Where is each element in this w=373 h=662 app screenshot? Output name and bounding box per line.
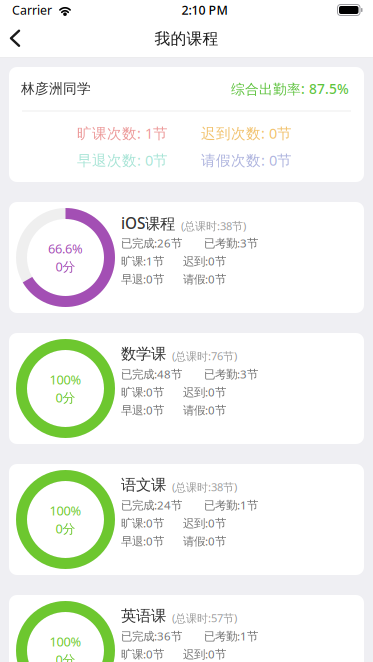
- staticText: 语文课: [121, 476, 166, 494]
- staticText: 0分: [55, 389, 75, 406]
- staticText: 请假:0节: [183, 533, 226, 549]
- staticText: 请假:0节: [183, 402, 226, 418]
- button[interactable]: 100%: [9, 333, 364, 444]
- staticText: 迟到:0节: [183, 515, 226, 531]
- staticText: 迟到次数: 0节: [201, 123, 292, 143]
- staticText: 数学课: [121, 345, 166, 363]
- button[interactable]: 66.6%: [9, 202, 364, 313]
- staticText: 林彦洲同学: [21, 80, 91, 97]
- staticText: 早退:0节: [121, 533, 164, 549]
- staticText: 100%: [49, 502, 81, 519]
- staticText: 已完成:48节: [121, 366, 182, 382]
- staticText: 已完成:26节: [121, 235, 182, 251]
- staticText: 已考勤:3节: [204, 366, 258, 382]
- staticText: iOS课程: [121, 213, 175, 233]
- staticText: 旷课:0节: [121, 384, 164, 400]
- staticText: 0分: [55, 520, 75, 537]
- staticText: 已考勤:3节: [204, 235, 258, 251]
- staticText: 已完成:24节: [121, 497, 182, 513]
- staticText: (总课时:76节): [172, 349, 237, 363]
- staticText: 请假次数: 0节: [201, 150, 292, 170]
- staticText: 0分: [55, 258, 75, 275]
- staticText: 0分: [55, 651, 75, 662]
- button[interactable]: Back: [0, 26, 36, 52]
- staticText: 迟到:0节: [183, 253, 226, 269]
- staticText: 2:10 PM: [181, 2, 227, 18]
- staticText: 早退次数: 0节: [77, 150, 168, 170]
- staticText: 早退:0节: [121, 402, 164, 418]
- staticText: 旷课:0节: [121, 515, 164, 531]
- staticText: 已考勤:1节: [204, 628, 258, 644]
- button[interactable]: 100%: [9, 595, 364, 662]
- staticText: 66.6%: [48, 240, 83, 257]
- staticText: (总课时:38节): [172, 480, 237, 494]
- staticText: Carrier: [12, 2, 52, 18]
- staticText: 100%: [49, 371, 81, 388]
- staticText: 100%: [49, 633, 81, 650]
- staticText: 已考勤:1节: [204, 497, 258, 513]
- staticText: 旷课:1节: [121, 253, 164, 269]
- staticText: (总课时:38节): [181, 218, 246, 233]
- staticText: 迟到:0节: [183, 384, 226, 400]
- staticText: 已完成:36节: [121, 628, 182, 644]
- staticText: 早退:0节: [121, 271, 164, 287]
- button[interactable]: 100%: [9, 464, 364, 575]
- staticText: 迟到:0节: [183, 646, 226, 662]
- staticText: 请假:0节: [183, 271, 226, 287]
- staticText: 旷课次数: 1节: [77, 123, 168, 143]
- staticText: (总课时:57节): [172, 611, 237, 625]
- staticText: 我的课程: [154, 29, 218, 48]
- staticText: 旷课:0节: [121, 646, 164, 662]
- staticText: 英语课: [121, 607, 166, 625]
- staticText: 综合出勤率: 87.5%: [231, 80, 349, 98]
